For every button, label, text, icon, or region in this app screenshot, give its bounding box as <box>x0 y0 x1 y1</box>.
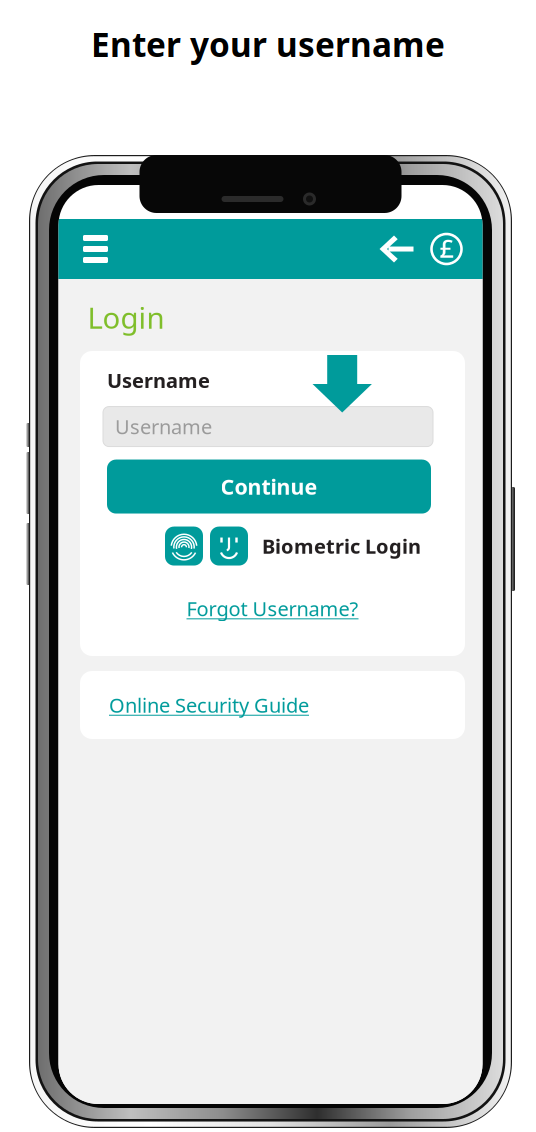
staticText: Biometric Login <box>262 533 421 559</box>
staticText: Enter your username <box>91 22 445 66</box>
button[interactable]: Continue <box>107 460 431 514</box>
staticText: Username <box>107 367 210 394</box>
staticText: Online Security Guide <box>109 692 309 718</box>
button[interactable]: Username <box>103 407 433 447</box>
button[interactable]: Forgot Username? <box>80 594 465 624</box>
button[interactable]: Menu <box>73 219 117 279</box>
button[interactable]: Accounts <box>426 219 466 279</box>
staticText: Username <box>115 413 212 440</box>
staticText: £ <box>439 231 453 265</box>
button[interactable]: Face login <box>210 527 248 566</box>
button[interactable]: Fingerprint login <box>165 527 203 566</box>
staticText: Continue <box>220 472 317 501</box>
staticText: Forgot Username? <box>186 595 358 622</box>
button[interactable]: Online Security Guide <box>80 671 465 739</box>
button[interactable]: Back <box>374 219 418 279</box>
staticText: Login <box>87 298 164 337</box>
